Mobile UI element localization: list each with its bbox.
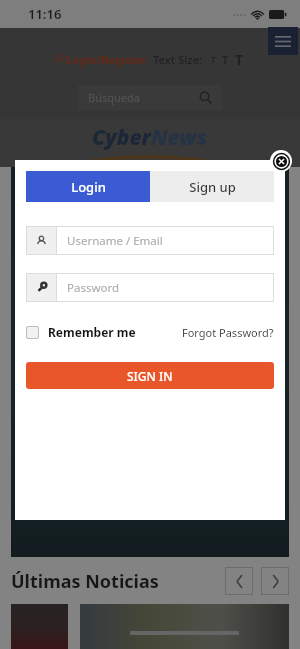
button[interactable]: T — [232, 50, 247, 69]
button[interactable]: Remember me — [26, 324, 136, 340]
staticText: Login — [71, 178, 106, 196]
button[interactable]: T — [208, 54, 219, 65]
button[interactable]: Close — [270, 150, 292, 172]
staticText: SIGN IN — [127, 368, 173, 384]
button[interactable]: SIGN IN — [26, 362, 274, 389]
staticText: T — [211, 54, 216, 65]
staticText: Forgot Password? — [182, 325, 274, 340]
button[interactable]: Sign up — [150, 171, 274, 202]
button[interactable]: Menu — [268, 27, 298, 55]
staticText: T — [235, 50, 244, 69]
button[interactable]: Previous — [225, 567, 253, 595]
button[interactable]: T — [219, 52, 232, 67]
button[interactable]: Password — [26, 273, 274, 302]
button[interactable]: Login/Register — [66, 52, 147, 67]
staticText: Login/Register — [66, 52, 147, 67]
staticText: Cyber — [92, 123, 151, 152]
button[interactable]: Forgot Password? — [182, 325, 274, 340]
staticText: Remember me — [48, 324, 136, 340]
staticText: Últimas Noticias — [11, 569, 159, 594]
button[interactable]: Next — [261, 567, 289, 595]
button[interactable] — [80, 604, 289, 649]
staticText: Búsqueda — [88, 90, 140, 105]
button[interactable]: Username / Email — [26, 226, 274, 255]
staticText: 11:16 — [28, 5, 62, 23]
button[interactable]: Login — [26, 171, 150, 202]
staticText: Sign up — [189, 178, 236, 196]
staticText: News — [151, 123, 208, 152]
staticText: T — [222, 52, 229, 67]
staticText: Text Size: — [153, 52, 203, 67]
button[interactable] — [11, 604, 68, 649]
button[interactable]: Búsqueda — [78, 85, 222, 110]
staticText: Username / Email — [67, 233, 163, 249]
staticText: Password — [67, 280, 120, 296]
